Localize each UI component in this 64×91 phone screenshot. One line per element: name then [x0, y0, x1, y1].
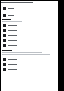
button[interactable]: item icon: [1, 28, 58, 33]
button[interactable]: item icon: [1, 38, 58, 43]
button[interactable]: item icon: [1, 23, 58, 28]
button[interactable]: item icon: [1, 6, 58, 11]
button[interactable]: item icon: [1, 33, 58, 38]
button[interactable]: item icon: [1, 67, 58, 72]
button[interactable]: item icon: [1, 43, 58, 48]
button[interactable]: item icon: [1, 57, 58, 62]
button[interactable]: item icon: [1, 62, 58, 67]
button[interactable]: item icon: [1, 13, 58, 18]
